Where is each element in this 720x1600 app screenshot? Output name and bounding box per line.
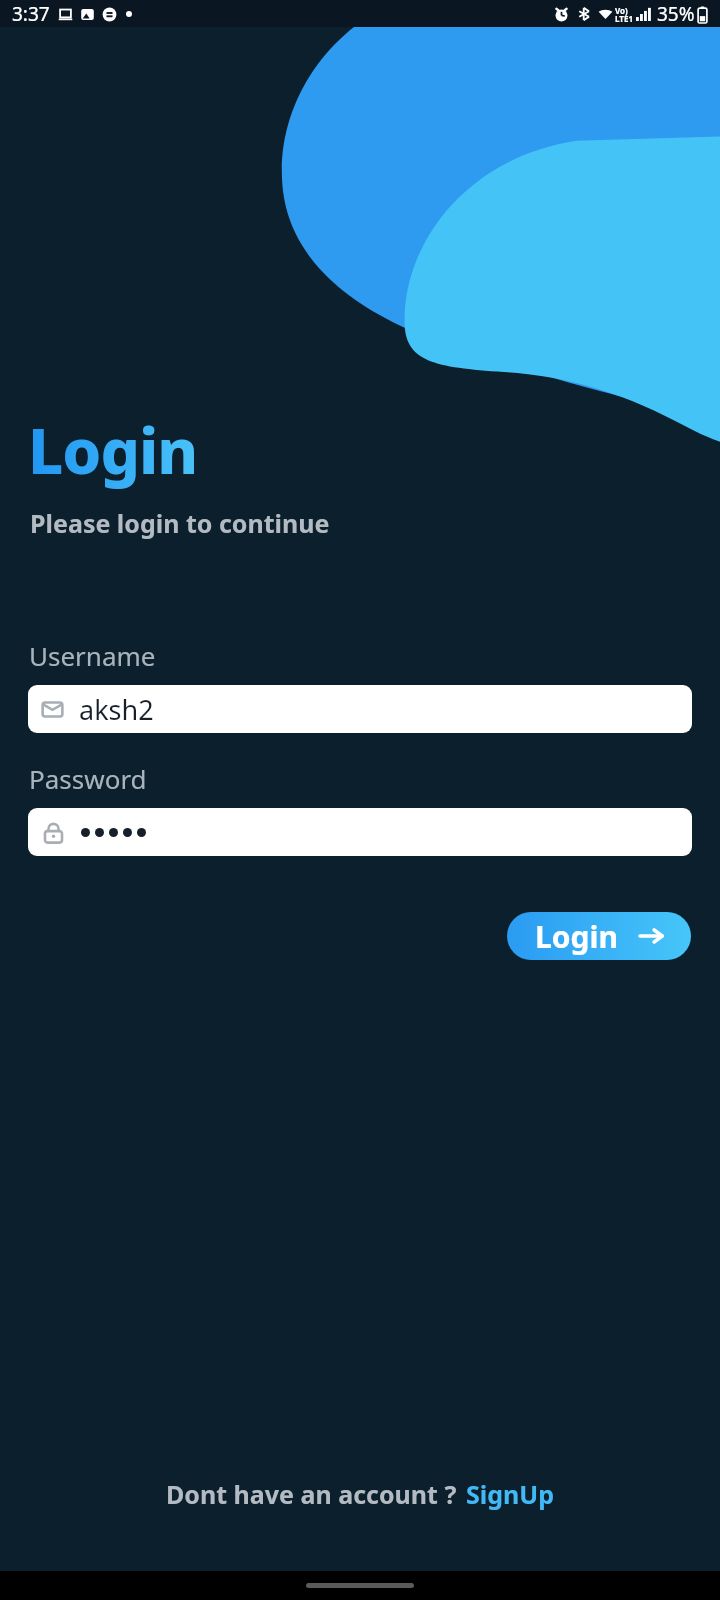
staticText: Password — [29, 761, 147, 796]
button[interactable]: SignUp — [466, 1477, 555, 1511]
staticText: Login — [28, 408, 198, 492]
staticText: Vo) LTE1 — [615, 5, 633, 24]
button[interactable]: Login — [507, 912, 691, 960]
button[interactable]: Password field — [28, 808, 692, 856]
staticText: Dont have an account ? — [166, 1477, 457, 1511]
staticText: 35% — [657, 1, 695, 27]
staticText: 3:37 — [12, 1, 50, 27]
staticText: Please login to continue — [30, 506, 330, 540]
staticText: SignUp — [466, 1477, 555, 1511]
staticText: aksh2 — [79, 691, 154, 728]
button[interactable]: Username field — [28, 685, 692, 733]
staticText: Login — [535, 916, 618, 957]
staticText: Username — [29, 638, 156, 673]
